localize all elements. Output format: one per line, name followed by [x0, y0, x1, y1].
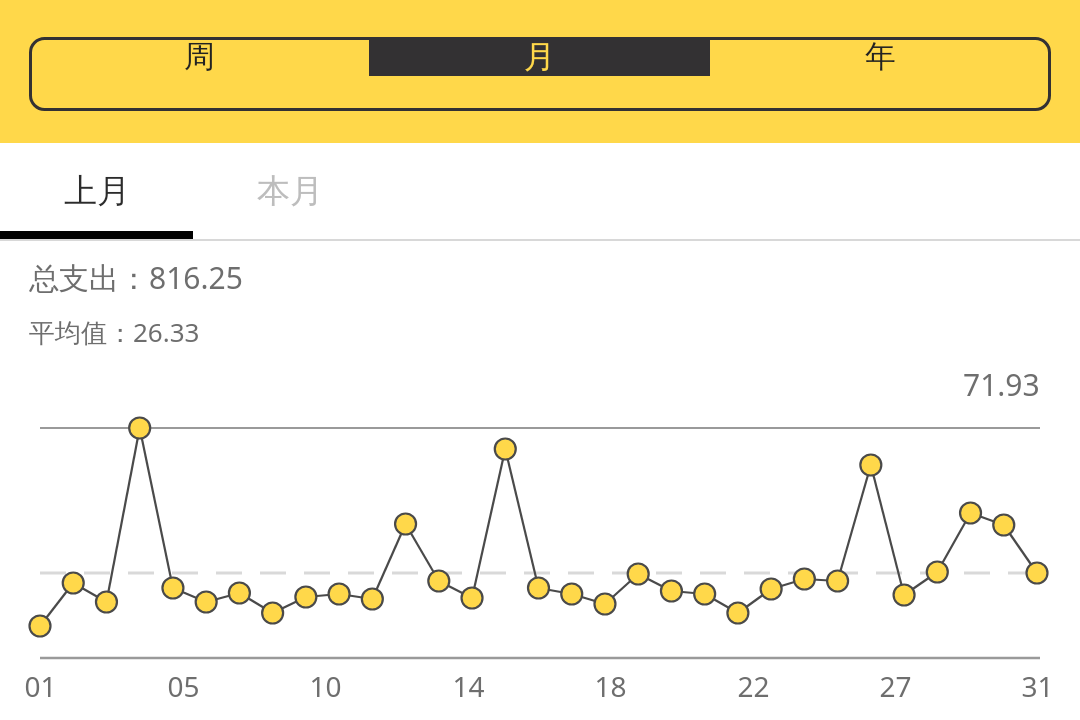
staticText: 14 — [452, 667, 485, 705]
staticText: 71.93 — [963, 364, 1040, 405]
staticText: 本月 — [257, 170, 323, 212]
button[interactable]: 本月 — [193, 143, 386, 239]
staticText: 31 — [1021, 667, 1054, 705]
staticText: 01 — [24, 667, 57, 705]
button[interactable]: 上月 — [0, 143, 193, 239]
staticText: 27 — [879, 667, 912, 705]
staticText: 22 — [737, 667, 770, 705]
button[interactable]: 年 — [710, 37, 1051, 76]
button[interactable]: 月 — [369, 37, 710, 76]
staticText: 平均值：26.33 — [29, 314, 200, 350]
staticText: 周 — [184, 37, 215, 76]
staticText: 05 — [167, 667, 200, 705]
staticText: 10 — [309, 667, 342, 705]
button[interactable]: 周 — [29, 37, 369, 76]
staticText: 总支出：816.25 — [29, 257, 243, 298]
staticText: 年 — [865, 37, 896, 76]
staticText: 上月 — [64, 170, 130, 212]
staticText: 18 — [594, 667, 627, 705]
staticText: 月 — [524, 37, 555, 76]
